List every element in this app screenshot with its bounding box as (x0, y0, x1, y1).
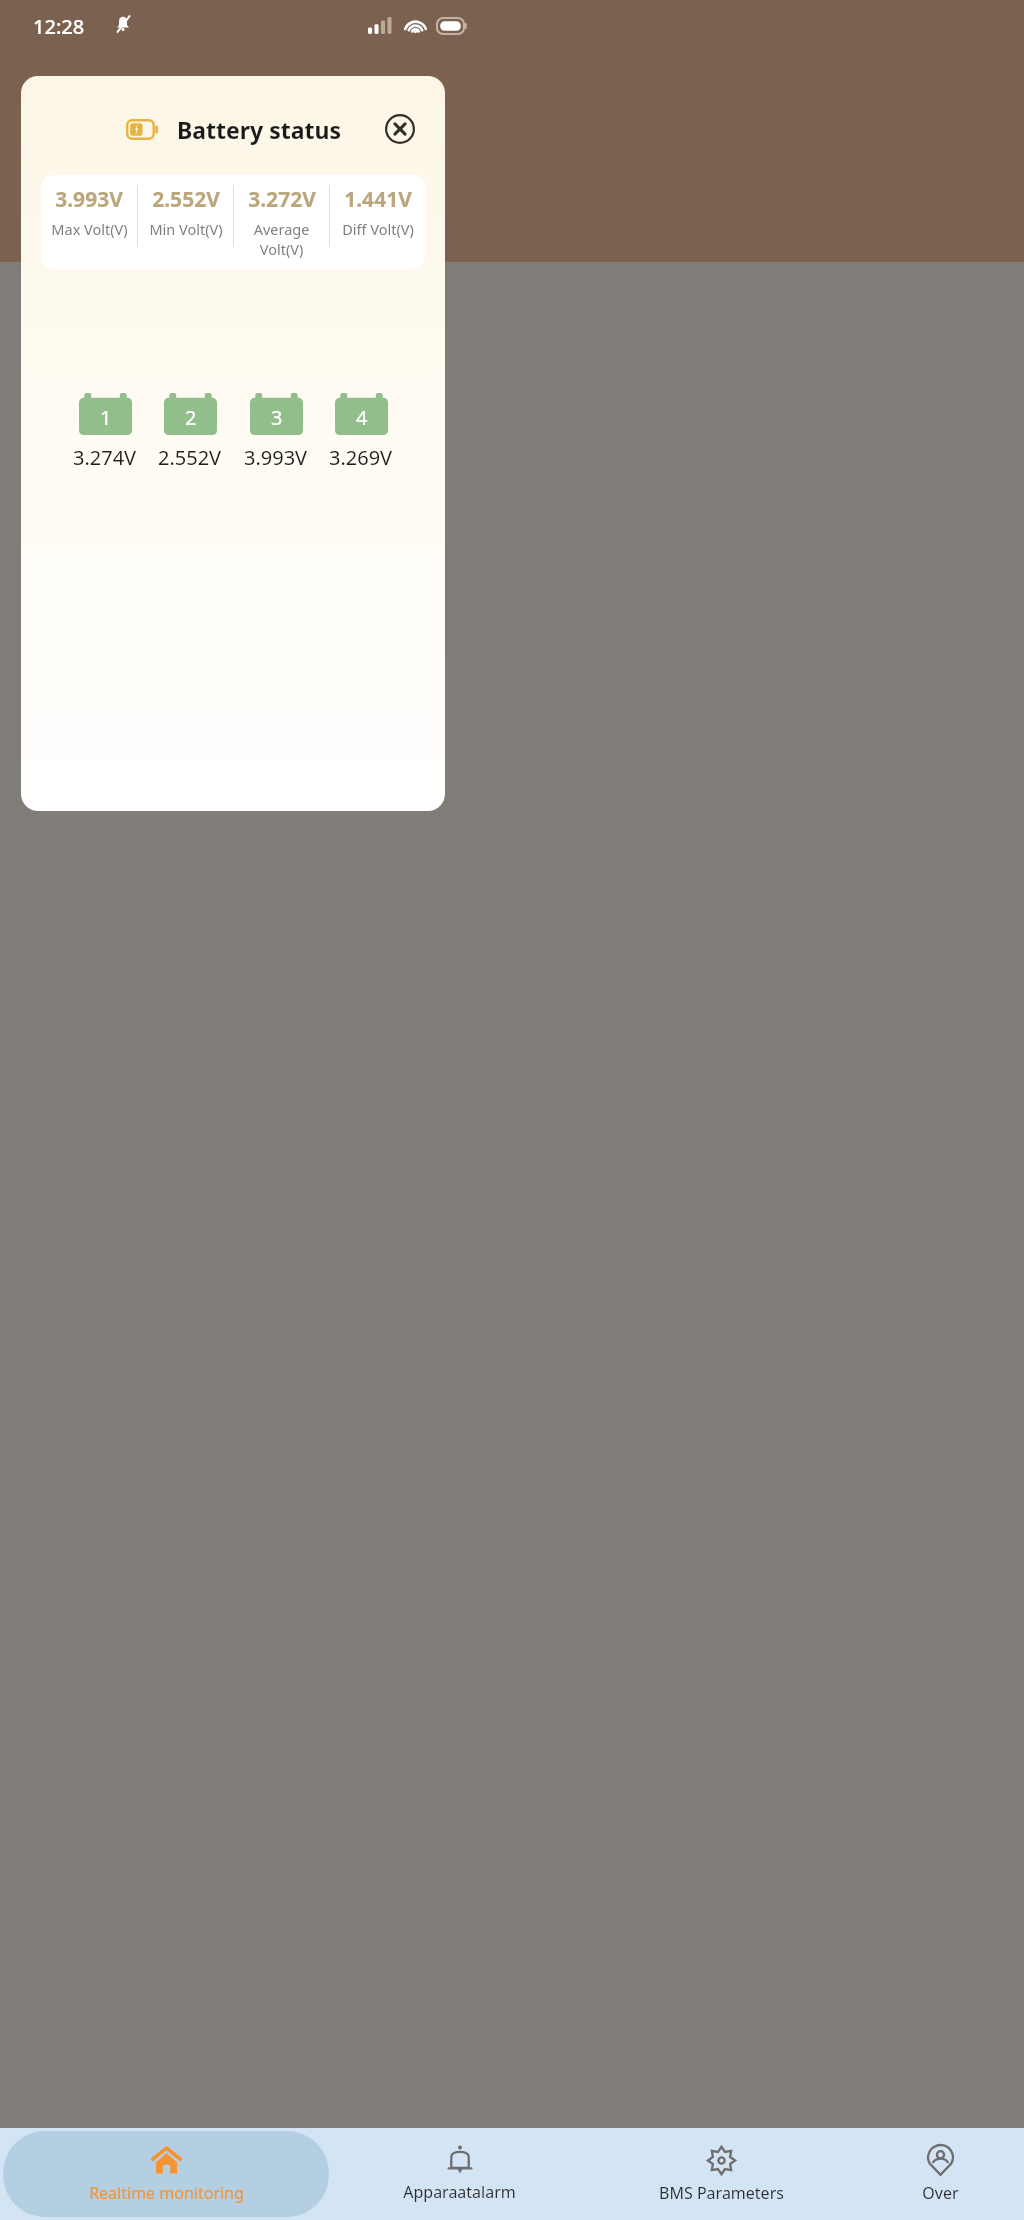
other: BMS Parameters (706, 2145, 737, 2176)
staticText: Apparaatalarm (403, 2181, 516, 2203)
button[interactable]: Over (859, 2131, 1021, 2217)
button[interactable]: 3 (244, 393, 308, 471)
staticText: BMS Parameters (659, 2182, 784, 2204)
staticText: 1 (100, 404, 112, 431)
button[interactable]: Realtime monitoring (3, 2131, 329, 2217)
staticText: 3.274V (73, 444, 137, 471)
staticText: Battery status (177, 114, 341, 145)
staticText: Average Volt(V) (234, 219, 329, 259)
staticText: Diff Volt(V) (342, 219, 414, 239)
staticText: 4 (356, 404, 368, 431)
button[interactable]: Apparaatalarm (335, 2131, 583, 2217)
other: Over (925, 2145, 956, 2176)
other: Apparaatalarm (445, 2145, 475, 2175)
staticText: 3 (271, 404, 283, 431)
staticText: Over (922, 2182, 959, 2204)
staticText: Realtime monitoring (89, 2182, 244, 2204)
staticText: 3.269V (329, 444, 393, 471)
staticText: 2.552V (152, 185, 220, 214)
staticText: 3.272V (248, 185, 316, 214)
staticText: 2.552V (158, 444, 222, 471)
other: Realtime monitoring (151, 2145, 182, 2176)
button[interactable]: 1 (73, 393, 137, 471)
staticText: 1.441V (344, 185, 412, 214)
button[interactable]: 2 (158, 393, 222, 471)
staticText: 3.993V (244, 444, 308, 471)
staticText: Max Volt(V) (51, 219, 128, 239)
button[interactable]: BMS Parameters (589, 2131, 853, 2217)
staticText: 2 (185, 404, 197, 431)
staticText: 3.993V (55, 185, 123, 214)
button[interactable]: 4 (329, 393, 393, 471)
button[interactable]: Close (377, 106, 423, 152)
staticText: Min Volt(V) (149, 219, 223, 239)
staticText: 12:28 (33, 13, 85, 40)
